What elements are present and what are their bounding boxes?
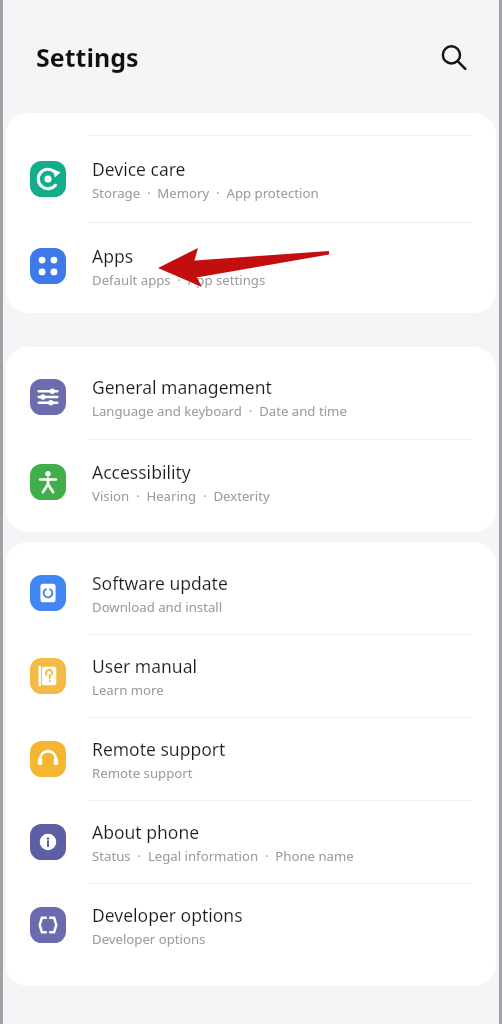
button[interactable]: Apps <box>6 223 496 309</box>
staticText: Remote support <box>92 764 193 782</box>
staticText: Remote support <box>92 737 226 761</box>
staticText: Settings <box>36 40 139 74</box>
staticText: User manual <box>92 654 197 678</box>
button[interactable]: About phone <box>6 801 496 883</box>
button[interactable]: Remote support <box>6 718 496 800</box>
staticText: Apps <box>92 244 134 268</box>
button[interactable]: Developer options <box>6 884 496 966</box>
staticText: Accessibility <box>92 460 191 484</box>
staticText: Learn more <box>92 681 164 699</box>
staticText: Developer options <box>92 903 243 927</box>
staticText: About phone <box>92 820 200 844</box>
staticText: Default apps · App settings <box>92 271 266 289</box>
staticText: Developer options <box>92 930 206 948</box>
staticText: Download and install <box>92 598 223 616</box>
staticText: Status · Legal information · Phone name <box>92 847 354 865</box>
staticText: Language and keyboard · Date and time <box>92 402 347 420</box>
staticText: Vision · Hearing · Dexterity <box>92 487 270 505</box>
staticText: Software update <box>92 571 228 595</box>
button[interactable]: Search <box>431 35 475 79</box>
button[interactable]: General management <box>6 355 496 439</box>
staticText: General management <box>92 375 272 399</box>
button[interactable]: Software update <box>6 552 496 634</box>
staticText: Device care <box>92 157 186 181</box>
button[interactable]: Accessibility <box>6 440 496 524</box>
button[interactable]: User manual <box>6 635 496 717</box>
button[interactable]: Device care <box>6 136 496 222</box>
staticText: Storage · Memory · App protection <box>92 184 319 202</box>
